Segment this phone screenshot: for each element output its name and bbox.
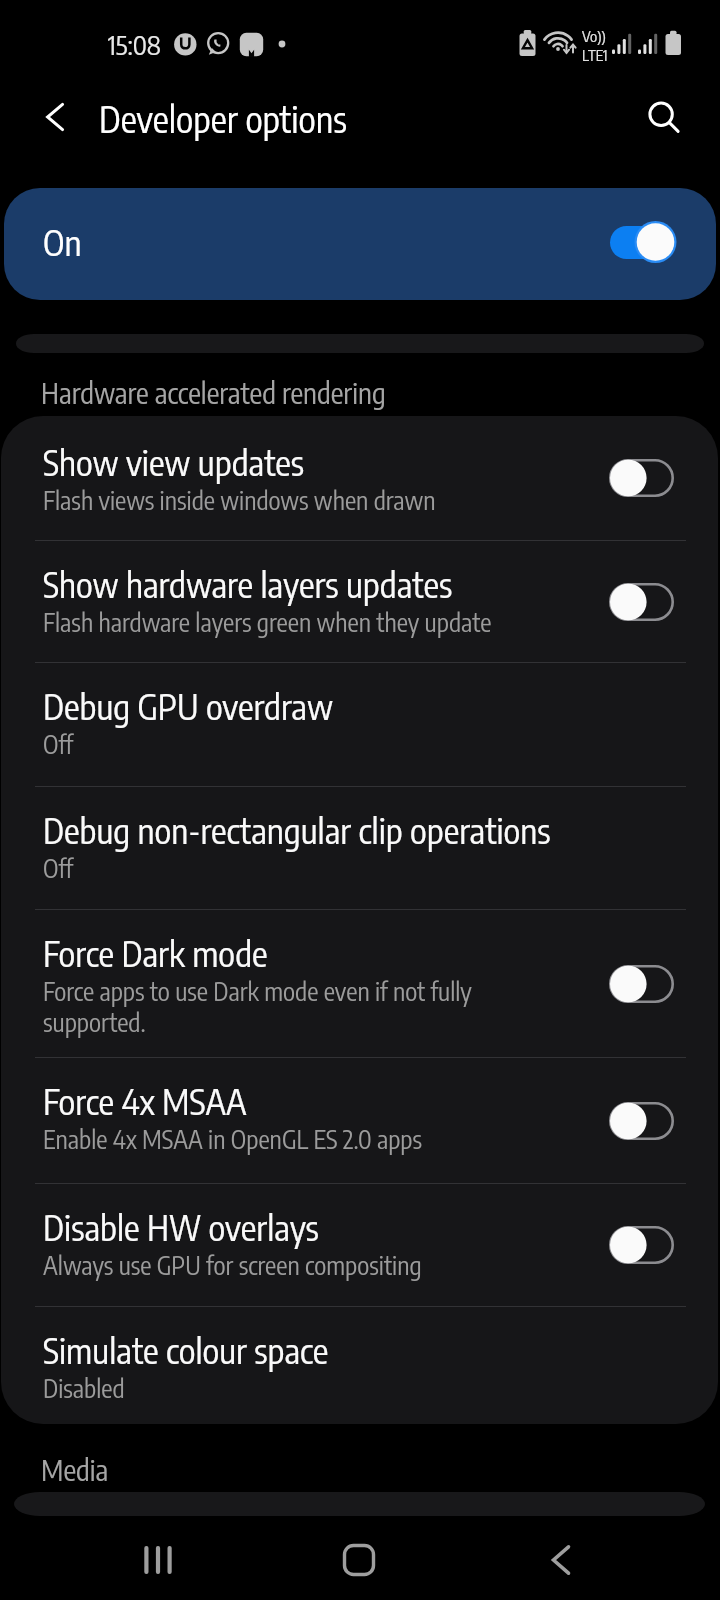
- staticText: Debug GPU overdraw: [43, 684, 334, 728]
- button[interactable]: Force 4x MSAA: [1, 1058, 718, 1183]
- staticText: Disable HW overlays: [43, 1205, 319, 1249]
- staticText: Show view updates: [43, 440, 305, 484]
- button[interactable]: Show view updates: [1, 416, 718, 540]
- staticText: Developer options: [99, 96, 347, 141]
- button[interactable]: Debug GPU overdraw: [1, 663, 718, 786]
- staticText: supported.: [43, 1006, 146, 1037]
- staticText: Disabled: [43, 1372, 125, 1403]
- button[interactable]: Simulate colour space: [1, 1307, 718, 1424]
- button[interactable]: Back: [440, 1525, 720, 1595]
- staticText: Vo)): [582, 27, 606, 46]
- button[interactable]: Recent apps: [0, 1525, 240, 1595]
- button[interactable]: Force Dark mode: [1, 910, 718, 1057]
- button[interactable]: Navigate up: [30, 95, 74, 139]
- staticText: Show hardware layers updates: [43, 562, 453, 606]
- staticText: 15:08: [108, 28, 161, 60]
- staticText: Force Dark mode: [43, 931, 268, 975]
- staticText: On: [43, 220, 82, 264]
- staticText: Flash views inside windows when drawn: [43, 484, 436, 515]
- staticText: Debug non-rectangular clip operations: [43, 808, 551, 852]
- staticText: Enable 4x MSAA in OpenGL ES 2.0 apps: [43, 1123, 422, 1154]
- staticText: Always use GPU for screen compositing: [43, 1249, 422, 1280]
- staticText: Off: [43, 852, 74, 883]
- button[interactable]: Disable HW overlays: [1, 1184, 718, 1306]
- button[interactable]: On: [4, 188, 716, 300]
- button[interactable]: Debug non-rectangular clip operations: [1, 787, 718, 909]
- button[interactable]: Search: [639, 92, 683, 136]
- staticText: Off: [43, 728, 74, 759]
- staticText: Media: [41, 1452, 109, 1488]
- staticText: Force 4x MSAA: [43, 1079, 247, 1123]
- button[interactable]: Home: [240, 1525, 440, 1595]
- staticText: LTE1: [582, 46, 608, 65]
- staticText: Flash hardware layers green when they up…: [43, 606, 492, 637]
- button[interactable]: Show hardware layers updates: [1, 541, 718, 662]
- staticText: Simulate colour space: [43, 1328, 329, 1372]
- staticText: Hardware accelerated rendering: [41, 375, 386, 411]
- staticText: Force apps to use Dark mode even if not …: [43, 975, 472, 1006]
